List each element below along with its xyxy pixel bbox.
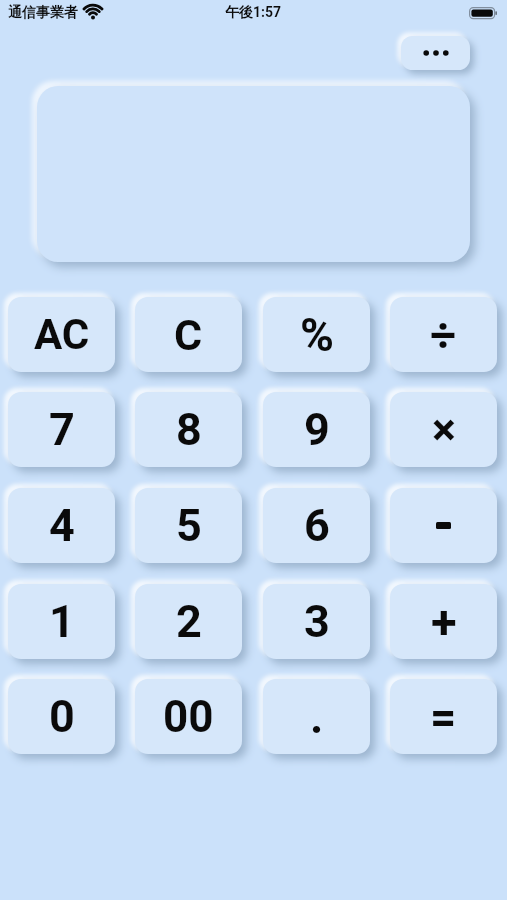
staticText: = (430, 690, 457, 744)
button[interactable]: 5 (135, 488, 242, 563)
button[interactable]: 6 (263, 488, 370, 563)
button[interactable]: ÷ (390, 297, 497, 372)
staticText: 2 (176, 595, 202, 648)
button[interactable]: 8 (135, 392, 242, 467)
button[interactable]: = (390, 679, 497, 754)
button[interactable]: AC (8, 297, 115, 372)
button[interactable]: 1 (8, 584, 115, 659)
staticText: 5 (176, 499, 202, 552)
staticText: ÷ (430, 308, 457, 362)
staticText: % (300, 308, 334, 362)
button[interactable]: 4 (8, 488, 115, 563)
staticText: 1 (49, 595, 75, 648)
staticText: 通信事業者 (8, 4, 78, 22)
button[interactable]: 9 (263, 392, 370, 467)
staticText: 0 (49, 690, 75, 743)
button[interactable] (401, 36, 470, 70)
button[interactable]: . (263, 679, 370, 754)
button[interactable]: C (135, 297, 242, 372)
staticText: 3 (304, 595, 330, 648)
staticText: 4 (49, 499, 75, 552)
button[interactable]: 7 (8, 392, 115, 467)
staticText: 8 (176, 403, 202, 456)
staticText: . (310, 690, 324, 744)
staticText: 9 (304, 403, 330, 456)
staticText: 午後1:57 (225, 4, 282, 22)
button[interactable]: 2 (135, 584, 242, 659)
staticText: 7 (49, 403, 75, 456)
button[interactable]: × (390, 392, 497, 467)
staticText: C (174, 310, 203, 360)
staticText: 6 (304, 499, 330, 552)
button[interactable]: % (263, 297, 370, 372)
staticText: + (431, 594, 457, 649)
staticText: × (432, 403, 456, 456)
button[interactable]: 0 (8, 679, 115, 754)
button[interactable]: 00 (135, 679, 242, 754)
button[interactable] (390, 488, 497, 563)
staticText: 00 (163, 691, 214, 743)
button[interactable]: + (390, 584, 497, 659)
button[interactable]: 3 (263, 584, 370, 659)
staticText: AC (34, 310, 90, 359)
